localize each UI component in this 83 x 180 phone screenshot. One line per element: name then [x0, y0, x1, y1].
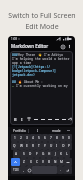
button[interactable]: .: [57, 166, 63, 174]
staticText: 2: [20, 136, 22, 140]
button[interactable]: W: [18, 142, 24, 150]
button[interactable]: 0: [66, 134, 72, 142]
button[interactable]: B: [46, 158, 52, 166]
button[interactable]: Symbols: [11, 166, 20, 174]
staticText: app a time: [12, 61, 34, 65]
staticText: K: [60, 152, 62, 156]
staticText: E: [26, 144, 28, 148]
button[interactable]: Link: [68, 116, 71, 122]
button[interactable]: K: [58, 150, 64, 158]
staticText: 0: [68, 136, 70, 140]
button[interactable]: 7: [48, 134, 54, 142]
button[interactable]: S: [20, 150, 27, 158]
button[interactable]: ###: [12, 53, 71, 123]
button[interactable]: 9: [60, 134, 66, 142]
button[interactable]: X: [27, 158, 34, 166]
staticText: S: [23, 152, 25, 156]
button[interactable]: 3: [24, 134, 30, 142]
staticText: I'm currently working on my portfolio: [14, 84, 71, 88]
button[interactable]: Y: [42, 142, 48, 150]
staticText: W: [20, 144, 23, 148]
staticText: Portfolio: [13, 129, 26, 133]
button[interactable]: F: [34, 150, 40, 158]
staticText: ##: [12, 80, 16, 84]
button[interactable]: Emoji: [26, 166, 32, 174]
button[interactable]: Bold: [12, 116, 18, 122]
button[interactable]: Format 1: [33, 116, 39, 122]
button[interactable]: 6: [42, 134, 48, 142]
staticText: badge/Jetpack-Compose)](https://: [12, 69, 71, 73]
button[interactable]: ,: [20, 166, 26, 174]
button[interactable]: Shift: [11, 158, 20, 166]
button[interactable]: L: [64, 150, 70, 158]
staticText: N: [54, 160, 57, 164]
button[interactable]: Expand suggestions: [65, 129, 72, 132]
staticText: O: [62, 144, 65, 148]
button[interactable]: Z: [20, 158, 27, 166]
button[interactable]: Format 4: [54, 116, 60, 122]
button[interactable]: Format 2: [40, 116, 46, 122]
button[interactable]: G: [40, 150, 46, 158]
staticText: I'm Aditya: [42, 53, 64, 57]
staticText: I: [21, 117, 23, 122]
button[interactable]: 4: [30, 134, 36, 142]
button[interactable]: Format 3: [47, 116, 53, 122]
button[interactable]: Italic: [19, 116, 25, 122]
staticText: Q: [13, 144, 16, 148]
button[interactable]: More options: [66, 43, 72, 49]
staticText: Markdown Editor: [11, 43, 49, 49]
button[interactable]: Enter: [63, 166, 72, 174]
staticText: jetpack.dev): [12, 73, 35, 77]
button[interactable]: J: [52, 150, 58, 158]
button[interactable]: U: [48, 142, 54, 150]
staticText: 4: [32, 136, 34, 140]
button[interactable]: H: [46, 150, 52, 158]
button[interactable]: Preview: [59, 43, 66, 50]
button[interactable]: 2: [18, 134, 24, 142]
staticText: X: [30, 160, 32, 164]
button[interactable]: Format 5: [61, 116, 67, 122]
staticText: T: [38, 144, 40, 148]
button[interactable]: 8: [54, 134, 60, 142]
staticText: .: [60, 168, 61, 172]
button[interactable]: V: [40, 158, 46, 166]
staticText: 👋: [38, 53, 42, 57]
staticText: ,: [23, 168, 24, 172]
staticText: B: [14, 117, 17, 122]
button[interactable]: D: [27, 150, 34, 158]
button[interactable]: made: [47, 129, 65, 133]
staticText: Switch to Full Screen: [8, 11, 76, 21]
staticText: Z: [23, 160, 25, 164]
button[interactable]: 1: [11, 134, 18, 142]
staticText: C: [36, 160, 39, 164]
button[interactable]: T: [36, 142, 42, 150]
button[interactable]: C: [34, 158, 40, 166]
button[interactable]: Header: [26, 116, 32, 122]
staticText: 7: [50, 136, 52, 140]
staticText: D: [29, 152, 32, 156]
button[interactable]: M: [58, 158, 64, 166]
staticText: 6: [44, 136, 46, 140]
staticText: made: [52, 129, 61, 133]
staticText: 3: [26, 136, 28, 140]
staticText: L: [66, 152, 68, 156]
button[interactable]: Q: [11, 142, 18, 150]
staticText: R: [32, 144, 34, 148]
button[interactable]: R: [30, 142, 36, 150]
staticText: -: [12, 84, 14, 88]
staticText: 🔥: [16, 80, 22, 84]
staticText: Y: [44, 144, 46, 148]
button[interactable]: O: [60, 142, 66, 150]
button[interactable]: Backspace: [64, 158, 72, 166]
button[interactable]: A: [13, 150, 20, 158]
button[interactable]: Portfolio: [11, 129, 28, 133]
button[interactable]: 5: [36, 134, 42, 142]
button[interactable]: E: [24, 142, 30, 150]
button[interactable]: I: [54, 142, 60, 150]
button[interactable]: P: [66, 142, 72, 150]
button[interactable]: N: [52, 158, 58, 166]
staticText: H: [48, 152, 51, 156]
staticText: I'm helping the world a better place one: [12, 57, 71, 61]
button[interactable]: I: [29, 129, 47, 133]
